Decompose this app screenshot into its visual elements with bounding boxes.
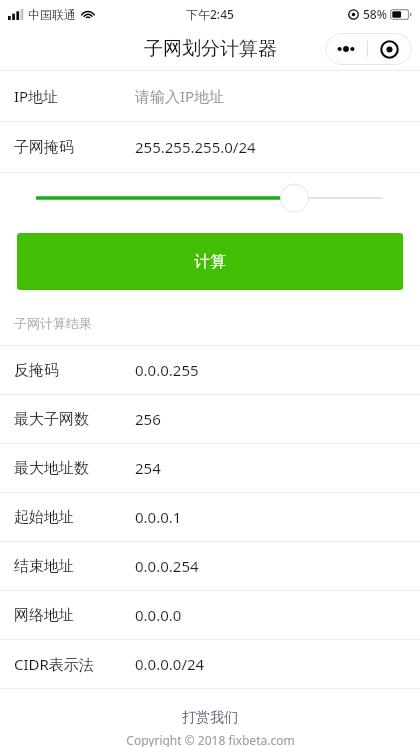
staticText: 254 bbox=[135, 458, 161, 478]
staticText: 计算 bbox=[194, 252, 226, 272]
staticText: 0.0.0.254 bbox=[135, 556, 199, 576]
staticText: 打赏我们 bbox=[182, 709, 238, 727]
button[interactable]: 子网掩码 bbox=[0, 122, 420, 172]
button[interactable]: 计算 bbox=[17, 233, 403, 290]
button[interactable]: 最大子网数 bbox=[0, 395, 420, 443]
staticText: IP地址 bbox=[14, 86, 59, 106]
staticText: 子网计算结果 bbox=[14, 315, 92, 331]
button[interactable]: CIDR表示法 bbox=[0, 640, 420, 688]
button[interactable]: 结束地址 bbox=[0, 542, 420, 590]
staticText: 子网掩码 bbox=[14, 138, 74, 157]
button[interactable]: Close mini program bbox=[368, 33, 411, 65]
staticText: CIDR表示法 bbox=[14, 654, 94, 674]
staticText: 下午2:45 bbox=[186, 6, 234, 22]
staticText: 网络地址 bbox=[14, 606, 74, 625]
staticText: 中国联通 bbox=[28, 7, 76, 22]
button[interactable]: 反掩码 bbox=[0, 346, 420, 394]
staticText: Copyright © 2018 fixbeta.com bbox=[126, 732, 295, 747]
staticText: 最大子网数 bbox=[14, 410, 89, 429]
staticText: 0.0.0.255 bbox=[135, 360, 199, 380]
staticText: 255.255.255.0/24 bbox=[135, 137, 256, 157]
staticText: 结束地址 bbox=[14, 557, 74, 576]
staticText: 反掩码 bbox=[14, 361, 59, 380]
staticText: 58% bbox=[363, 6, 387, 22]
staticText: 0.0.0.0 bbox=[135, 605, 182, 625]
staticText: 256 bbox=[135, 409, 161, 429]
button[interactable]: More options bbox=[325, 33, 367, 65]
staticText: 0.0.0.0/24 bbox=[135, 654, 205, 674]
button[interactable]: 最大地址数 bbox=[0, 444, 420, 492]
button[interactable]: IP地址 bbox=[0, 71, 420, 121]
staticText: 最大地址数 bbox=[14, 459, 89, 478]
staticText: 子网划分计算器 bbox=[144, 37, 277, 61]
staticText: 起始地址 bbox=[14, 508, 74, 527]
staticText: 0.0.0.1 bbox=[135, 507, 182, 527]
button[interactable]: 打赏我们 bbox=[168, 707, 252, 729]
staticText: 请输入IP地址 bbox=[135, 86, 225, 106]
button[interactable] bbox=[0, 173, 420, 222]
button[interactable]: 起始地址 bbox=[0, 493, 420, 541]
button[interactable]: 网络地址 bbox=[0, 591, 420, 639]
